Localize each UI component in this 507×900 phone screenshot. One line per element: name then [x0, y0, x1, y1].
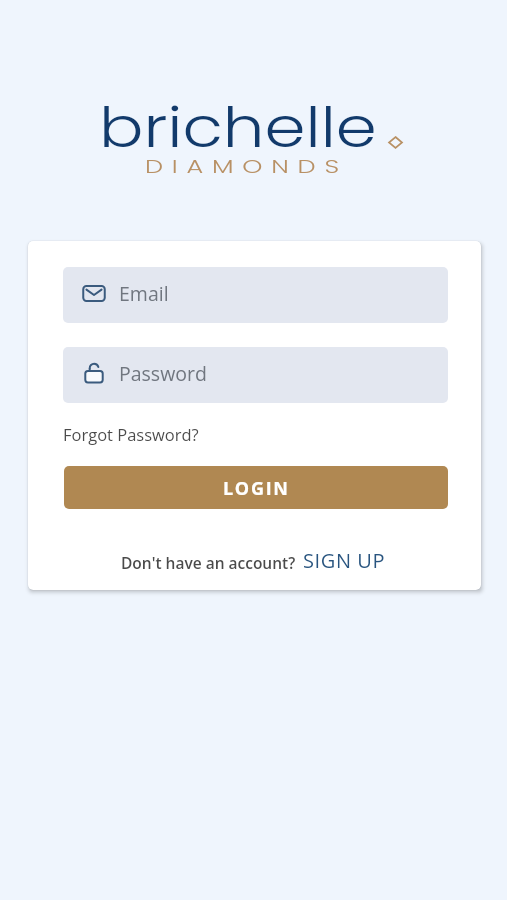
button[interactable]: Forgot Password?: [63, 423, 199, 445]
button[interactable]: SIGN UP: [303, 547, 386, 574]
button[interactable]: LOGIN: [64, 466, 448, 509]
staticText: Password: [119, 360, 207, 387]
staticText: Forgot Password?: [63, 423, 199, 445]
staticText: Don't have an account?: [121, 552, 296, 573]
staticText: LOGIN: [223, 476, 290, 501]
button[interactable]: Password field: [63, 347, 448, 403]
button[interactable]: Email field: [63, 267, 448, 323]
staticText: Email: [119, 280, 169, 307]
staticText: SIGN UP: [303, 547, 386, 574]
